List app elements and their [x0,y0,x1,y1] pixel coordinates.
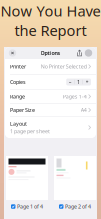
button[interactable]: Page 1 of 4 [11,203,43,210]
staticText: Copies [10,78,26,86]
staticText: 1 page per sheet [10,128,50,135]
staticText: Now You Have [0,1,100,20]
staticText: Page 1 of 4 [17,203,43,210]
staticText: Page 2 of 4 [65,203,91,210]
button[interactable]: Share [75,48,84,58]
button[interactable]: Paper Size [5,103,96,116]
button[interactable]: Close [8,48,17,58]
button[interactable]: Layout [5,117,96,138]
staticText: Printer [10,63,26,70]
staticText: Range [10,93,25,100]
staticText: A4 [81,106,87,114]
staticText: + [85,78,88,86]
staticText: 1 [77,78,80,86]
staticText: No Printer Selected [41,63,87,70]
button[interactable]: Page 2 of 4 [59,203,91,210]
button[interactable]: Range [5,90,96,103]
button[interactable]: Printer [5,59,96,74]
staticText: Pages 1-4 [63,93,87,100]
staticText: Paper Size [10,106,35,114]
staticText: the Report [14,20,86,40]
staticText: – [69,78,72,86]
staticText: Layout [10,120,27,127]
staticText: Options [40,49,60,57]
button[interactable]: More options [84,48,93,58]
